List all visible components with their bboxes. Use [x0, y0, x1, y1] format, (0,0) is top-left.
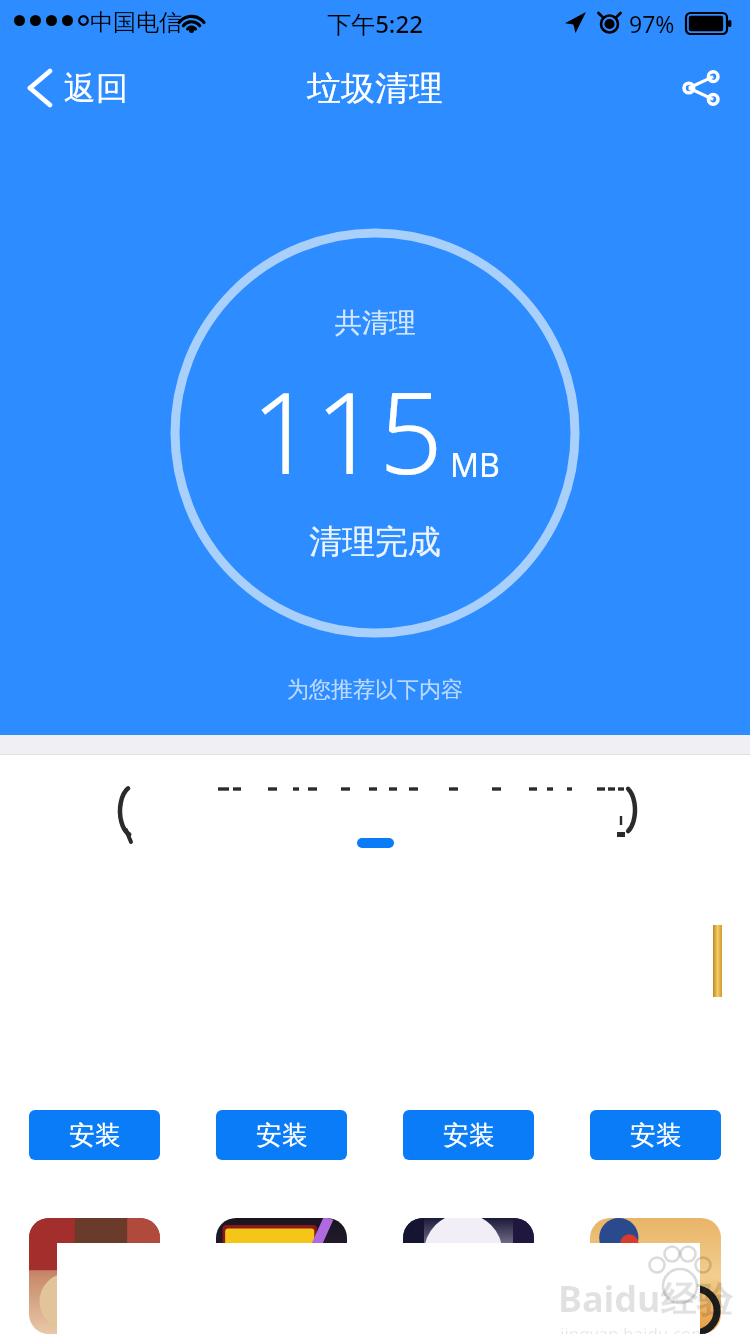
staticText: 共清理 — [335, 306, 416, 340]
button[interactable] — [357, 838, 394, 848]
staticText: 安装 — [256, 1119, 308, 1152]
staticText: 清理完成 — [309, 521, 441, 563]
staticText: jingyan.baidu.com — [560, 1322, 708, 1334]
staticText: 安装 — [630, 1119, 682, 1152]
staticText: 垃圾清理 — [307, 67, 443, 110]
staticText: 返回 — [64, 68, 128, 108]
button[interactable]: Share — [672, 59, 730, 117]
button[interactable] — [403, 1218, 534, 1334]
button[interactable] — [29, 1218, 160, 1334]
button[interactable] — [216, 1218, 347, 1334]
staticText: 115 — [251, 354, 443, 507]
staticText: 97% — [629, 8, 675, 39]
staticText: MB — [450, 443, 500, 487]
staticText: Baidu经验 — [558, 1274, 733, 1323]
button[interactable]: 安装 — [403, 1110, 534, 1160]
button[interactable] — [590, 1218, 721, 1334]
button[interactable]: 返回 — [22, 62, 134, 114]
button[interactable]: 安装 — [29, 1110, 160, 1160]
staticText: 下午5:22 — [0, 7, 750, 40]
staticText: 为您推荐以下内容 — [0, 676, 750, 704]
staticText: 中国电信 — [90, 8, 182, 37]
button[interactable]: 安装 — [216, 1110, 347, 1160]
staticText: 安装 — [443, 1119, 495, 1152]
staticText: 安装 — [69, 1119, 121, 1152]
button[interactable]: 安装 — [590, 1110, 721, 1160]
